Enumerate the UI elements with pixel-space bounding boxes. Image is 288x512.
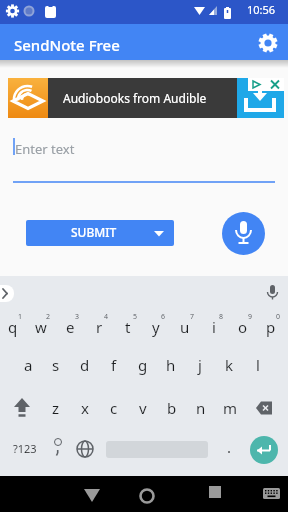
button[interactable]: h bbox=[157, 351, 185, 379]
button[interactable]: k bbox=[215, 351, 243, 379]
staticText: l bbox=[256, 355, 260, 375]
button[interactable]: p bbox=[257, 313, 285, 341]
staticText: Enter text bbox=[15, 140, 75, 158]
button[interactable]: Enter text bbox=[12, 132, 276, 187]
button[interactable]: n bbox=[187, 394, 215, 422]
button[interactable]: q bbox=[0, 313, 27, 341]
staticText: k bbox=[225, 355, 234, 375]
staticText: t bbox=[125, 317, 131, 337]
staticText: f bbox=[111, 355, 117, 375]
staticText: 3 bbox=[75, 312, 80, 322]
staticText: 8 bbox=[219, 312, 224, 322]
button[interactable] bbox=[222, 212, 265, 255]
button[interactable]: v bbox=[129, 394, 157, 422]
button[interactable]: w bbox=[27, 313, 55, 341]
staticText: a bbox=[24, 355, 33, 375]
staticText: SUBMIT bbox=[71, 224, 117, 240]
staticText: g bbox=[138, 355, 148, 375]
button[interactable]: i bbox=[200, 313, 228, 341]
staticText: 9 bbox=[248, 312, 253, 322]
staticText: c bbox=[110, 398, 118, 418]
staticText: v bbox=[139, 398, 147, 418]
staticText: 2 bbox=[46, 312, 51, 322]
button[interactable]: m bbox=[216, 394, 244, 422]
button[interactable]: ?123 bbox=[5, 434, 45, 462]
button[interactable]: l bbox=[244, 351, 272, 379]
staticText: r bbox=[96, 317, 103, 337]
button[interactable]: e bbox=[56, 313, 84, 341]
button[interactable] bbox=[248, 396, 278, 420]
staticText: p bbox=[266, 317, 276, 337]
button[interactable]: b bbox=[158, 394, 186, 422]
button[interactable]: d bbox=[71, 351, 99, 379]
button[interactable] bbox=[266, 78, 284, 91]
button[interactable]: SUBMIT bbox=[26, 220, 174, 246]
staticText: x bbox=[81, 398, 89, 418]
button[interactable]: . bbox=[215, 433, 243, 461]
staticText: . bbox=[227, 437, 232, 457]
button[interactable] bbox=[8, 396, 36, 420]
button[interactable]: s bbox=[42, 351, 70, 379]
staticText: h bbox=[166, 355, 176, 375]
staticText: 10:56 bbox=[247, 2, 276, 17]
button[interactable]: y bbox=[142, 313, 170, 341]
staticText: 0 bbox=[276, 312, 281, 322]
staticText: Audiobooks from Audible bbox=[63, 90, 207, 106]
button[interactable]: x bbox=[71, 394, 99, 422]
staticText: i bbox=[212, 317, 216, 337]
staticText: 6 bbox=[161, 312, 166, 322]
button[interactable] bbox=[137, 486, 157, 506]
button[interactable] bbox=[0, 285, 14, 302]
button[interactable] bbox=[263, 488, 281, 502]
button[interactable] bbox=[250, 436, 278, 464]
staticText: n bbox=[196, 398, 206, 418]
staticText: 5 bbox=[133, 312, 138, 322]
button[interactable]: c bbox=[100, 394, 128, 422]
staticText: m bbox=[223, 398, 238, 418]
button[interactable]: a bbox=[14, 351, 42, 379]
staticText: w bbox=[35, 317, 47, 337]
staticText: s bbox=[52, 355, 60, 375]
button[interactable]: r bbox=[85, 313, 113, 341]
staticText: u bbox=[180, 317, 190, 337]
button[interactable]: Audiobooks from Audible bbox=[8, 78, 284, 118]
staticText: z bbox=[52, 398, 60, 418]
button[interactable]: f bbox=[100, 351, 128, 379]
button[interactable]: z bbox=[42, 394, 70, 422]
button[interactable] bbox=[82, 484, 102, 504]
button[interactable]: j bbox=[186, 351, 214, 379]
button[interactable]: u bbox=[171, 313, 199, 341]
staticText: e bbox=[66, 317, 75, 337]
staticText: 1 bbox=[18, 312, 23, 322]
button[interactable] bbox=[74, 438, 96, 460]
staticText: 4 bbox=[104, 312, 109, 322]
staticText: SendNote Free bbox=[14, 35, 120, 55]
staticText: j bbox=[198, 355, 202, 375]
staticText: 7 bbox=[190, 312, 195, 322]
button[interactable] bbox=[46, 436, 70, 462]
staticText: ?123 bbox=[13, 441, 37, 456]
button[interactable] bbox=[205, 484, 225, 504]
staticText: y bbox=[152, 317, 160, 337]
staticText: b bbox=[167, 398, 177, 418]
staticText: q bbox=[8, 317, 18, 337]
button[interactable]: o bbox=[229, 313, 257, 341]
staticText: d bbox=[80, 355, 90, 375]
staticText: o bbox=[238, 317, 248, 337]
button[interactable] bbox=[254, 28, 282, 56]
button[interactable]: g bbox=[129, 351, 157, 379]
button[interactable]: t bbox=[114, 313, 142, 341]
